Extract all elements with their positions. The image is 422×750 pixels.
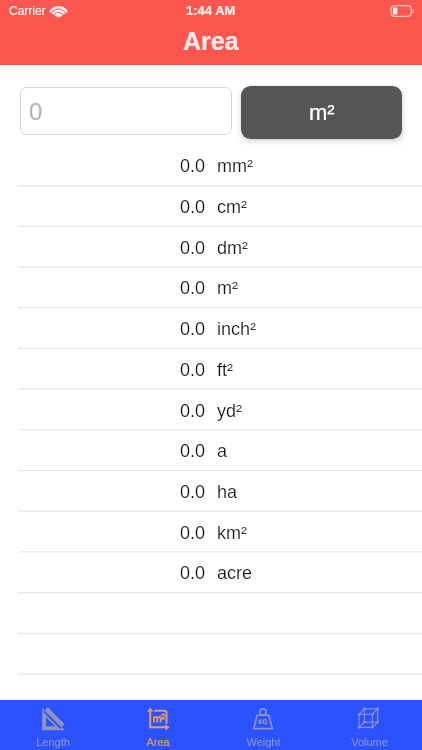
- staticText: a: [217, 441, 228, 461]
- staticText: 0.0: [180, 482, 206, 502]
- staticText: 0.0: [180, 563, 206, 583]
- button[interactable]: 0.0: [0, 186, 422, 227]
- button[interactable]: Area: [105, 700, 210, 750]
- staticText: 0.0: [180, 197, 206, 217]
- button[interactable]: 0.0: [0, 390, 422, 431]
- staticText: m²: [309, 100, 335, 125]
- button[interactable]: 0.0: [0, 267, 422, 308]
- staticText: 0.0: [180, 319, 206, 339]
- staticText: 0.0: [180, 401, 206, 421]
- button[interactable]: 0.0: [0, 471, 422, 512]
- staticText: 0.0: [180, 360, 206, 380]
- staticText: cm²: [217, 197, 247, 217]
- staticText: Weight: [246, 736, 281, 748]
- staticText: 1:44 AM: [186, 3, 236, 18]
- staticText: inch²: [217, 319, 257, 339]
- button[interactable]: 0.0: [0, 552, 422, 593]
- staticText: 0: [29, 98, 43, 125]
- staticText: Volume: [351, 736, 388, 748]
- staticText: 0.0: [180, 441, 206, 461]
- staticText: yd²: [217, 401, 243, 421]
- button[interactable]: 0.0: [0, 145, 422, 186]
- staticText: km²: [217, 523, 247, 543]
- staticText: dm²: [217, 238, 248, 258]
- staticText: 0.0: [180, 238, 206, 258]
- staticText: 0.0: [180, 523, 206, 543]
- button[interactable]: 0.0: [0, 430, 422, 471]
- button[interactable]: 0.0: [0, 512, 422, 553]
- staticText: Carrier: [9, 4, 46, 17]
- button[interactable]: Length: [0, 700, 105, 750]
- button[interactable]: 0.0: [0, 308, 422, 349]
- staticText: Length: [36, 736, 70, 748]
- button[interactable]: m²: [241, 86, 402, 139]
- staticText: 0.0: [180, 278, 206, 298]
- button[interactable]: 0.0: [0, 349, 422, 390]
- staticText: ha: [217, 482, 238, 502]
- button[interactable]: Weight: [210, 700, 316, 750]
- staticText: mm²: [217, 156, 253, 176]
- staticText: Area: [146, 736, 170, 748]
- button[interactable]: 0.0: [0, 227, 422, 268]
- staticText: ft²: [217, 360, 233, 380]
- button[interactable]: 0: [20, 87, 232, 135]
- staticText: acre: [217, 563, 253, 583]
- button[interactable]: Volume: [316, 700, 422, 750]
- staticText: m²: [217, 278, 238, 298]
- staticText: 0.0: [180, 156, 206, 176]
- staticText: Area: [183, 27, 239, 55]
